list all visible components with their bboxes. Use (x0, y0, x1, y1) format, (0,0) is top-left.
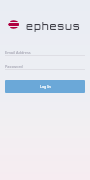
staticText: Password (5, 64, 23, 69)
button[interactable]: Log In (5, 80, 85, 93)
staticText: Log In (40, 84, 51, 89)
staticText: ephesus (26, 20, 81, 33)
staticText: Email Address (5, 50, 31, 55)
